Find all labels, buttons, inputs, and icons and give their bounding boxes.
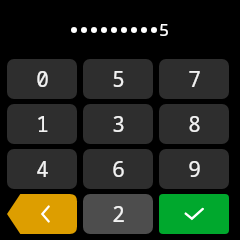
button[interactable]: 4 [7,149,77,189]
staticText: 9 [188,155,201,184]
button[interactable]: Backspace [7,194,77,234]
staticText: 1 [36,110,49,139]
staticText: 4 [36,155,49,184]
button[interactable]: 9 [159,149,229,189]
staticText: 5 [159,18,170,41]
button[interactable]: 1 [7,104,77,144]
staticText: 2 [112,200,125,229]
staticText: 6 [112,155,125,184]
staticText: 0 [36,65,49,94]
button[interactable]: Confirm [159,194,229,234]
button[interactable]: 3 [83,104,153,144]
staticText: 7 [188,65,201,94]
button[interactable]: 5 [83,59,153,99]
button[interactable]: 7 [159,59,229,99]
button[interactable]: 8 [159,104,229,144]
button[interactable]: 0 [7,59,77,99]
staticText: 5 [112,65,125,94]
staticText: 3 [112,110,125,139]
button[interactable]: 6 [83,149,153,189]
button[interactable]: 2 [83,194,153,234]
staticText: 8 [188,110,201,139]
